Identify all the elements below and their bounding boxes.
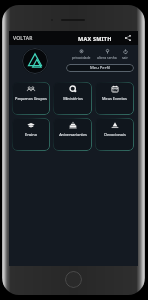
button[interactable]: Aniversariantes <box>53 118 92 151</box>
button[interactable]: VOLTAR <box>9 32 37 45</box>
staticText: Meus Eventos <box>102 96 127 101</box>
staticText: MAX SMITH <box>78 35 112 42</box>
button[interactable]: Devocionais <box>95 118 134 151</box>
button[interactable]: sair <box>122 49 128 60</box>
staticText: sair <box>122 55 128 60</box>
button[interactable]: Ensino <box>12 118 50 151</box>
button[interactable]: altera senha <box>97 49 117 60</box>
button[interactable]: Profile logo <box>22 48 48 74</box>
staticText: Devocionais <box>104 132 126 137</box>
button[interactable]: Meus Eventos <box>95 82 134 115</box>
button[interactable]: Meu Perfil <box>66 64 134 72</box>
button[interactable]: privacidade <box>72 49 91 60</box>
staticText: altera senha <box>97 55 117 60</box>
staticText: Aniversariantes <box>59 132 87 137</box>
button[interactable]: Ministérios <box>53 82 92 115</box>
staticText: Ensino <box>25 132 37 137</box>
staticText: Pequenos Grupos <box>15 96 47 101</box>
staticText: Ministérios <box>63 96 83 101</box>
button[interactable]: Share <box>121 31 135 45</box>
staticText: privacidade <box>72 55 91 60</box>
button[interactable]: Pequenos Grupos <box>12 82 50 115</box>
staticText: VOLTAR <box>13 35 33 42</box>
staticText: Meu Perfil <box>90 65 111 71</box>
